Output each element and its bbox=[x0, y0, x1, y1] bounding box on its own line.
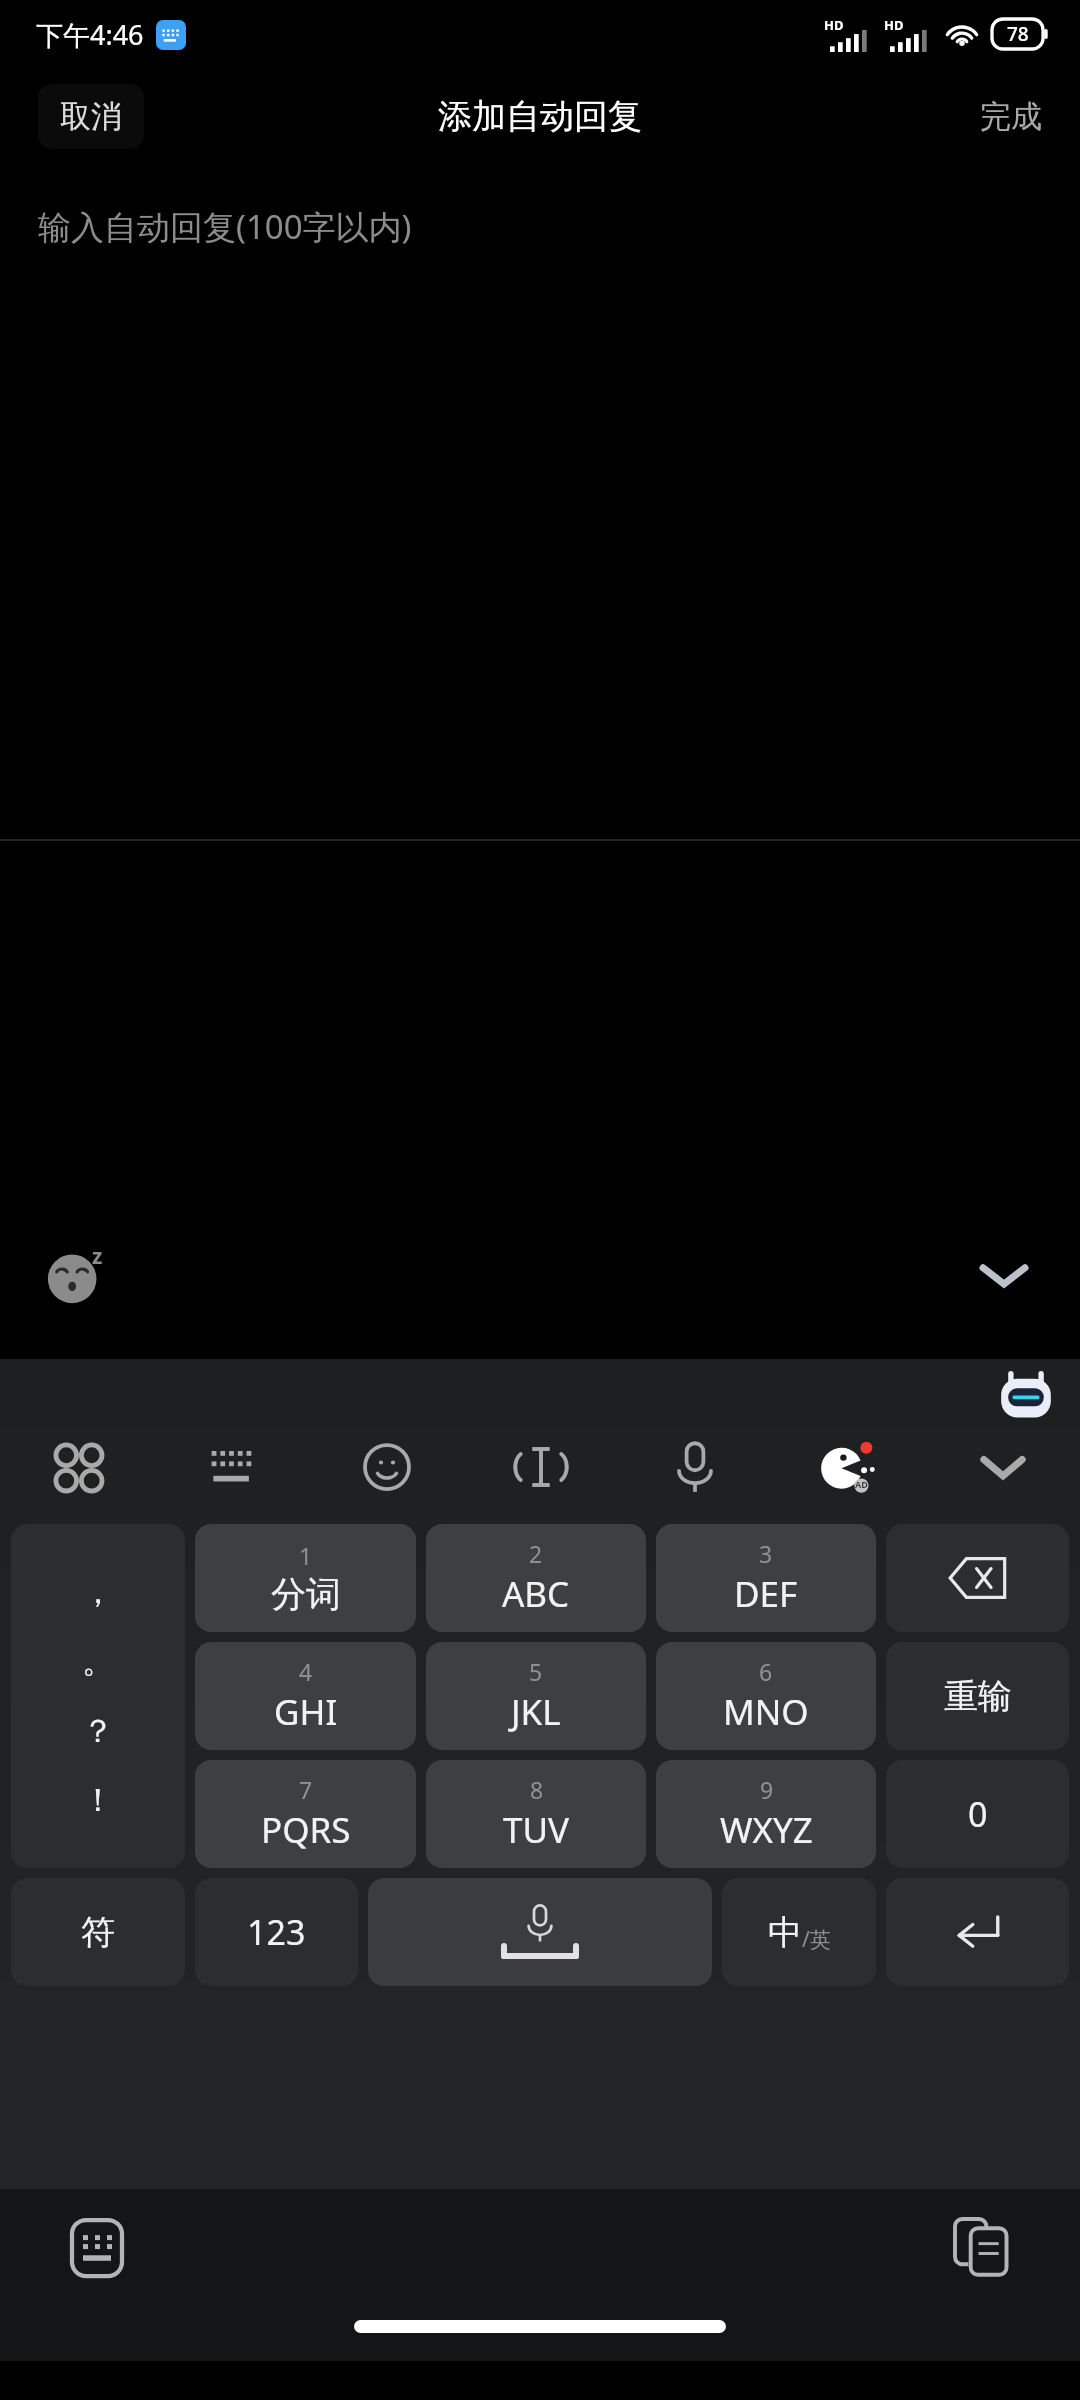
button[interactable]: 符 bbox=[11, 1878, 185, 1986]
button[interactable]: 9 bbox=[656, 1760, 876, 1868]
button[interactable]: 6 bbox=[656, 1642, 876, 1750]
button[interactable]: Clipboard bbox=[944, 2209, 1022, 2287]
staticText: 3 bbox=[759, 1538, 773, 1569]
staticText: 下午4:46 bbox=[36, 16, 144, 53]
staticText: 添加自动回复 bbox=[438, 95, 642, 138]
button[interactable]: Space bbox=[368, 1878, 712, 1986]
staticText: 9 bbox=[760, 1774, 774, 1805]
button[interactable]: 中 bbox=[722, 1878, 876, 1986]
staticText: 分词 bbox=[271, 1572, 341, 1616]
button[interactable]: Text editing bbox=[464, 1417, 618, 1517]
staticText: 2 bbox=[529, 1538, 543, 1569]
staticText: /英 bbox=[802, 1925, 831, 1954]
button[interactable]: Assistant bbox=[772, 1417, 926, 1517]
staticText: ！ bbox=[82, 1780, 114, 1820]
button[interactable]: Backspace bbox=[886, 1524, 1069, 1632]
button[interactable]: 5 bbox=[426, 1642, 646, 1750]
button[interactable]: 重输 bbox=[886, 1642, 1069, 1750]
staticText: MNO bbox=[723, 1688, 809, 1736]
button[interactable]: 123 bbox=[195, 1878, 358, 1986]
staticText: 8 bbox=[530, 1774, 544, 1805]
staticText: PQRS bbox=[261, 1806, 351, 1854]
staticText: TUV bbox=[503, 1806, 570, 1854]
staticText: 0 bbox=[968, 1791, 988, 1837]
staticText: 。 bbox=[82, 1641, 114, 1681]
staticText: ABC bbox=[502, 1570, 570, 1618]
button[interactable]: 7 bbox=[195, 1760, 416, 1868]
button[interactable]: 完成 bbox=[942, 83, 1080, 150]
button[interactable]: Apps bbox=[0, 1417, 155, 1517]
button[interactable]: 8 bbox=[426, 1760, 646, 1868]
button[interactable]: Switch keyboard bbox=[58, 2209, 136, 2287]
button[interactable]: Emoji bbox=[310, 1417, 464, 1517]
button[interactable]: Voice input bbox=[618, 1417, 772, 1517]
staticText: AD bbox=[855, 1478, 868, 1490]
button[interactable]: 1 bbox=[195, 1524, 416, 1632]
staticText: 6 bbox=[759, 1656, 773, 1687]
staticText: 中 bbox=[768, 1911, 802, 1954]
button[interactable]: Sleep emoji bbox=[34, 1233, 118, 1317]
staticText: DEF bbox=[734, 1570, 798, 1618]
staticText: 符 bbox=[81, 1911, 115, 1954]
staticText: 5 bbox=[529, 1656, 543, 1687]
staticText: 输入自动回复(100字以内) bbox=[38, 204, 412, 249]
staticText: 1 bbox=[299, 1540, 313, 1571]
button[interactable]: 2 bbox=[426, 1524, 646, 1632]
staticText: GHI bbox=[274, 1688, 338, 1736]
button[interactable]: Enter bbox=[886, 1878, 1069, 1986]
button[interactable]: AI assistant bbox=[992, 1363, 1060, 1431]
staticText: HD bbox=[824, 16, 844, 34]
button[interactable]: 0 bbox=[886, 1760, 1069, 1868]
button[interactable]: Hide keyboard bbox=[926, 1417, 1080, 1517]
staticText: 78 bbox=[1007, 21, 1029, 47]
staticText: 4 bbox=[299, 1656, 313, 1687]
button[interactable]: Keyboard layout bbox=[155, 1417, 310, 1517]
staticText: 重输 bbox=[944, 1675, 1012, 1718]
button[interactable]: ， bbox=[11, 1524, 185, 1868]
staticText: ， bbox=[82, 1572, 114, 1612]
staticText: 7 bbox=[299, 1774, 313, 1805]
button[interactable]: 4 bbox=[195, 1642, 416, 1750]
staticText: WXYZ bbox=[720, 1806, 813, 1854]
staticText: ？ bbox=[82, 1711, 114, 1751]
button[interactable]: Collapse bbox=[960, 1231, 1048, 1319]
button[interactable]: 3 bbox=[656, 1524, 876, 1632]
staticText: JKL bbox=[511, 1688, 561, 1736]
staticText: 123 bbox=[247, 1909, 306, 1955]
button[interactable]: 取消 bbox=[38, 84, 144, 149]
staticText: z bbox=[92, 1242, 103, 1271]
staticText: 完成 bbox=[980, 97, 1042, 136]
staticText: HD bbox=[884, 16, 904, 34]
staticText: 取消 bbox=[60, 97, 122, 136]
